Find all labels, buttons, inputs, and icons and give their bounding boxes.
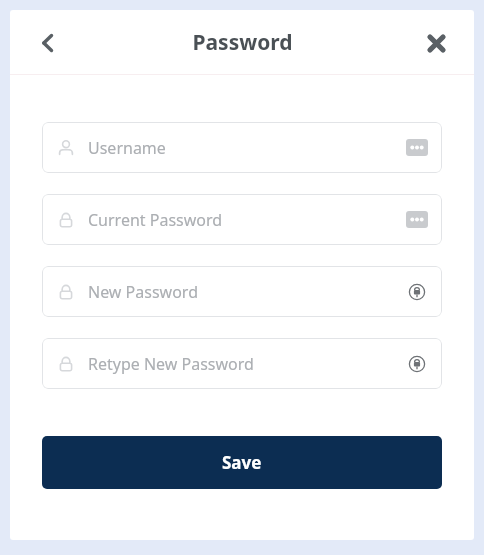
staticText: Username [88,137,406,159]
button[interactable]: Save [42,436,442,489]
staticText: Password [192,28,293,57]
button[interactable]: Show text [406,211,428,228]
button[interactable]: Username [42,122,442,173]
staticText: New Password [88,281,406,303]
button[interactable]: New Password [42,266,442,317]
staticText: Current Password [88,209,406,231]
button[interactable]: Show text [406,139,428,156]
button[interactable]: Show password [406,281,428,303]
staticText: Save [222,451,262,474]
button[interactable]: Close [416,23,456,63]
button[interactable]: Show password [406,353,428,375]
button[interactable]: Back [28,23,68,63]
button[interactable]: Retype New Password [42,338,442,389]
button[interactable]: Current Password [42,194,442,245]
staticText: Retype New Password [88,353,406,375]
